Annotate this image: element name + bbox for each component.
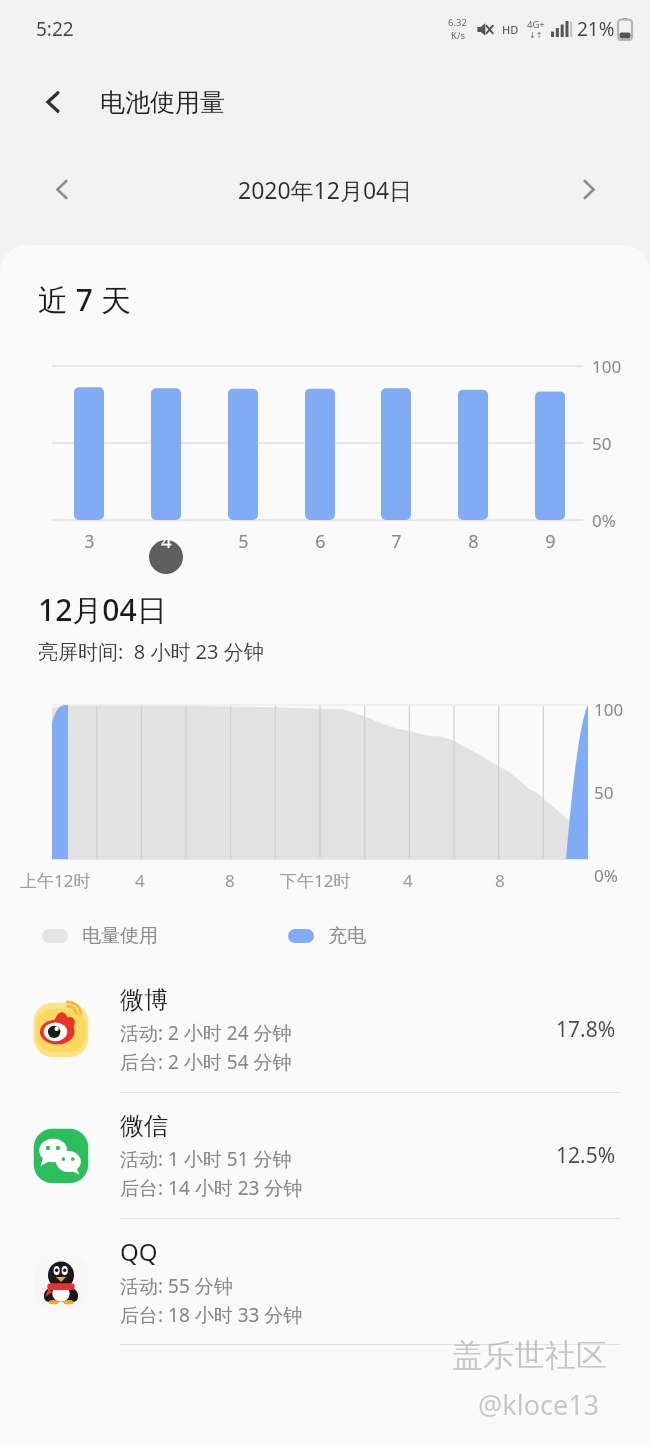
button[interactable]: Previous day — [40, 167, 84, 211]
staticText: 活动: 55 分钟 — [120, 1273, 233, 1299]
staticText: 100 — [594, 698, 624, 721]
button[interactable]: Next day — [566, 167, 610, 211]
staticText: 4 — [135, 869, 145, 892]
staticText: 6 — [315, 529, 326, 554]
staticText: 6.32 — [448, 16, 467, 29]
staticText: 12月04日 — [38, 589, 167, 630]
staticText: 3 — [84, 529, 95, 554]
staticText: 0% — [592, 509, 616, 532]
staticText: 5:22 — [36, 16, 74, 42]
staticText: 8 — [495, 869, 505, 892]
staticText: 50 — [594, 781, 614, 804]
staticText: ↓↑ — [529, 31, 543, 40]
staticText: K/s — [451, 29, 465, 42]
staticText: 下午12时 — [280, 869, 351, 892]
staticText: 2020年12月04日 — [238, 174, 413, 205]
staticText: 21% — [577, 16, 615, 42]
button[interactable]: QQ — [0, 1219, 650, 1345]
staticText: 后台: 14 小时 23 分钟 — [120, 1175, 303, 1201]
staticText: 50 — [592, 432, 612, 455]
staticText: 0% — [594, 864, 618, 887]
staticText: 活动: 1 小时 51 分钟 — [120, 1146, 292, 1172]
button[interactable]: 微信 — [0, 1093, 650, 1219]
staticText: 4 — [161, 529, 172, 554]
staticText: 100 — [592, 355, 622, 378]
staticText: 4 — [403, 869, 413, 892]
button[interactable]: Back — [30, 78, 78, 126]
staticText: 8 — [225, 869, 235, 892]
staticText: 17.8% — [556, 1015, 616, 1044]
staticText: 4G+ — [527, 18, 545, 31]
staticText: QQ — [120, 1235, 158, 1268]
staticText: HD — [502, 22, 519, 37]
staticText: 电池使用量 — [100, 87, 225, 118]
staticText: 电量使用 — [82, 924, 158, 948]
staticText: @kloce13 — [478, 1386, 600, 1423]
staticText: 7 — [391, 529, 402, 554]
staticText: 盖乐世社区 — [452, 1336, 607, 1375]
button[interactable]: 微博 — [0, 967, 650, 1093]
staticText: 8 — [468, 529, 479, 554]
staticText: 5 — [238, 529, 249, 554]
staticText: 后台: 18 小时 33 分钟 — [120, 1302, 303, 1328]
staticText: 后台: 2 小时 54 分钟 — [120, 1049, 292, 1075]
staticText: 微信 — [120, 1111, 168, 1141]
staticText: 近 7 天 — [38, 279, 131, 320]
staticText: 上午12时 — [20, 869, 91, 892]
staticText: 充电 — [328, 924, 366, 948]
staticText: 亮屏时间: 8 小时 23 分钟 — [38, 638, 264, 665]
staticText: 微博 — [120, 985, 168, 1015]
staticText: 活动: 2 小时 24 分钟 — [120, 1020, 292, 1046]
staticText: 12.5% — [556, 1141, 616, 1170]
staticText: 9 — [545, 529, 556, 554]
